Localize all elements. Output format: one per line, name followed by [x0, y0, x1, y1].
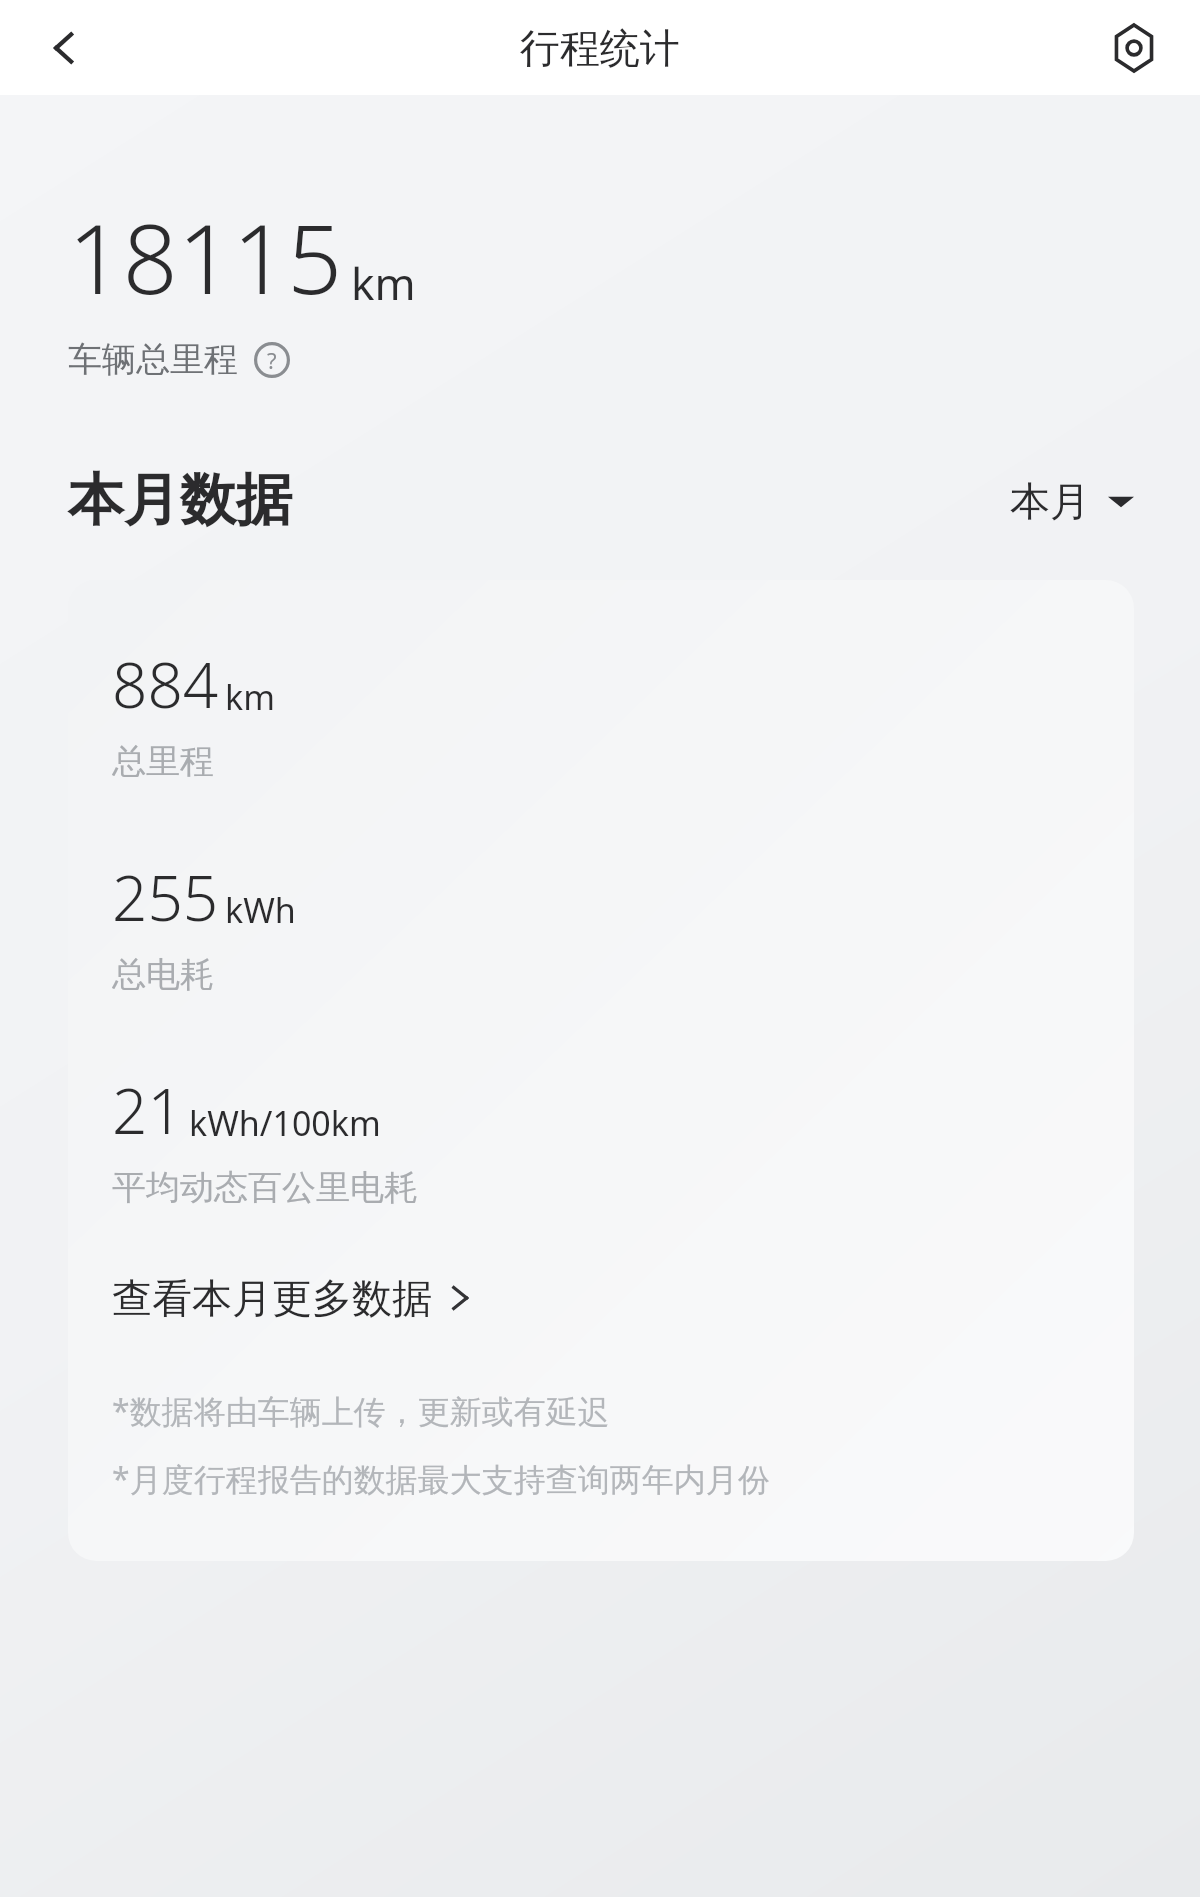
staticText: 总电耗 — [112, 953, 214, 996]
staticText: 884 — [112, 642, 219, 726]
staticText: 255 — [112, 855, 219, 939]
button[interactable]: Settings — [1102, 16, 1166, 80]
staticText: 查看本月更多数据 — [112, 1273, 432, 1323]
button[interactable]: 查看本月更多数据 — [112, 1273, 474, 1323]
button[interactable]: 本月 — [1010, 476, 1134, 526]
staticText: 18115 — [68, 191, 343, 322]
button[interactable]: 帮助 — [252, 340, 292, 380]
staticText: km — [225, 674, 275, 720]
staticText: 行程统计 — [520, 23, 680, 73]
staticText: kWh/100km — [189, 1100, 381, 1146]
staticText: 总里程 — [112, 740, 214, 783]
staticText: kWh — [225, 887, 296, 933]
staticText: 车辆总里程 — [68, 338, 238, 381]
staticText: *月度行程报告的数据最大支持查询两年内月份 — [112, 1457, 770, 1501]
staticText: 本月数据 — [68, 465, 292, 536]
staticText: *数据将由车辆上传，更新或有延迟 — [112, 1389, 610, 1433]
button[interactable]: Back — [34, 17, 96, 79]
staticText: 21 — [112, 1068, 183, 1152]
staticText: 平均动态百公里电耗 — [112, 1166, 418, 1209]
staticText: km — [351, 253, 416, 313]
staticText: 本月 — [1010, 476, 1090, 526]
staticText: ? — [267, 345, 277, 375]
